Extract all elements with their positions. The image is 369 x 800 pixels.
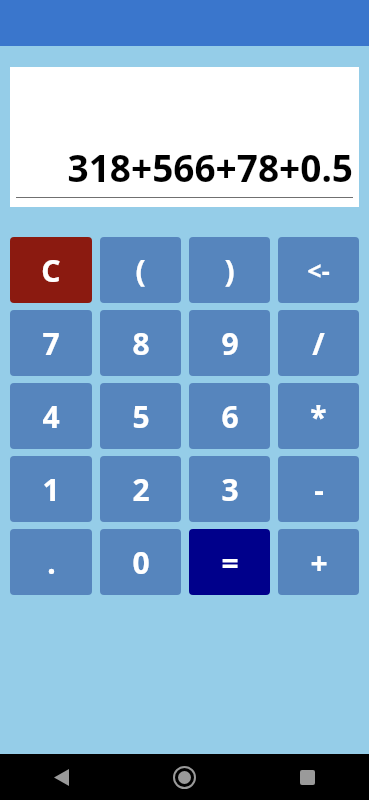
button[interactable]: <- xyxy=(278,237,359,303)
button[interactable]: Recent apps xyxy=(246,754,369,800)
button[interactable]: 2 xyxy=(100,456,181,522)
staticText: 4 xyxy=(42,396,60,437)
button[interactable]: . xyxy=(10,529,92,595)
button[interactable]: / xyxy=(278,310,359,376)
button[interactable]: + xyxy=(278,529,359,595)
button[interactable]: 5 xyxy=(100,383,181,449)
staticText: 7 xyxy=(42,323,60,364)
button[interactable]: 1 xyxy=(10,456,92,522)
staticText: ) xyxy=(224,250,235,291)
button[interactable]: 9 xyxy=(189,310,270,376)
staticText: 6 xyxy=(221,396,239,437)
button[interactable]: ) xyxy=(189,237,270,303)
button[interactable]: 7 xyxy=(10,310,92,376)
button[interactable]: = xyxy=(189,529,270,595)
staticText: + xyxy=(310,542,328,583)
staticText: 318+566+78+0.5 xyxy=(16,142,353,192)
staticText: 8 xyxy=(132,323,150,364)
staticText: / xyxy=(312,323,325,364)
button[interactable]: 4 xyxy=(10,383,92,449)
button[interactable]: * xyxy=(278,383,359,449)
button[interactable]: 3 xyxy=(189,456,270,522)
button[interactable]: ( xyxy=(100,237,181,303)
staticText: 9 xyxy=(221,323,239,364)
staticText: 2 xyxy=(132,469,150,510)
button[interactable]: 8 xyxy=(100,310,181,376)
staticText: 5 xyxy=(132,396,150,437)
staticText: = xyxy=(221,542,239,583)
button[interactable]: 0 xyxy=(100,529,181,595)
staticText: C xyxy=(41,250,61,291)
staticText: ( xyxy=(135,250,146,291)
staticText: 0 xyxy=(132,542,150,583)
staticText: <- xyxy=(307,253,330,287)
staticText: 1 xyxy=(42,469,60,510)
button[interactable]: C xyxy=(10,237,92,303)
button[interactable]: 6 xyxy=(189,383,270,449)
button[interactable]: Home xyxy=(123,754,246,800)
button[interactable]: - xyxy=(278,456,359,522)
staticText: - xyxy=(314,469,324,510)
staticText: . xyxy=(47,542,56,583)
staticText: 3 xyxy=(221,469,239,510)
button[interactable]: Back xyxy=(0,754,123,800)
staticText: * xyxy=(310,396,327,437)
